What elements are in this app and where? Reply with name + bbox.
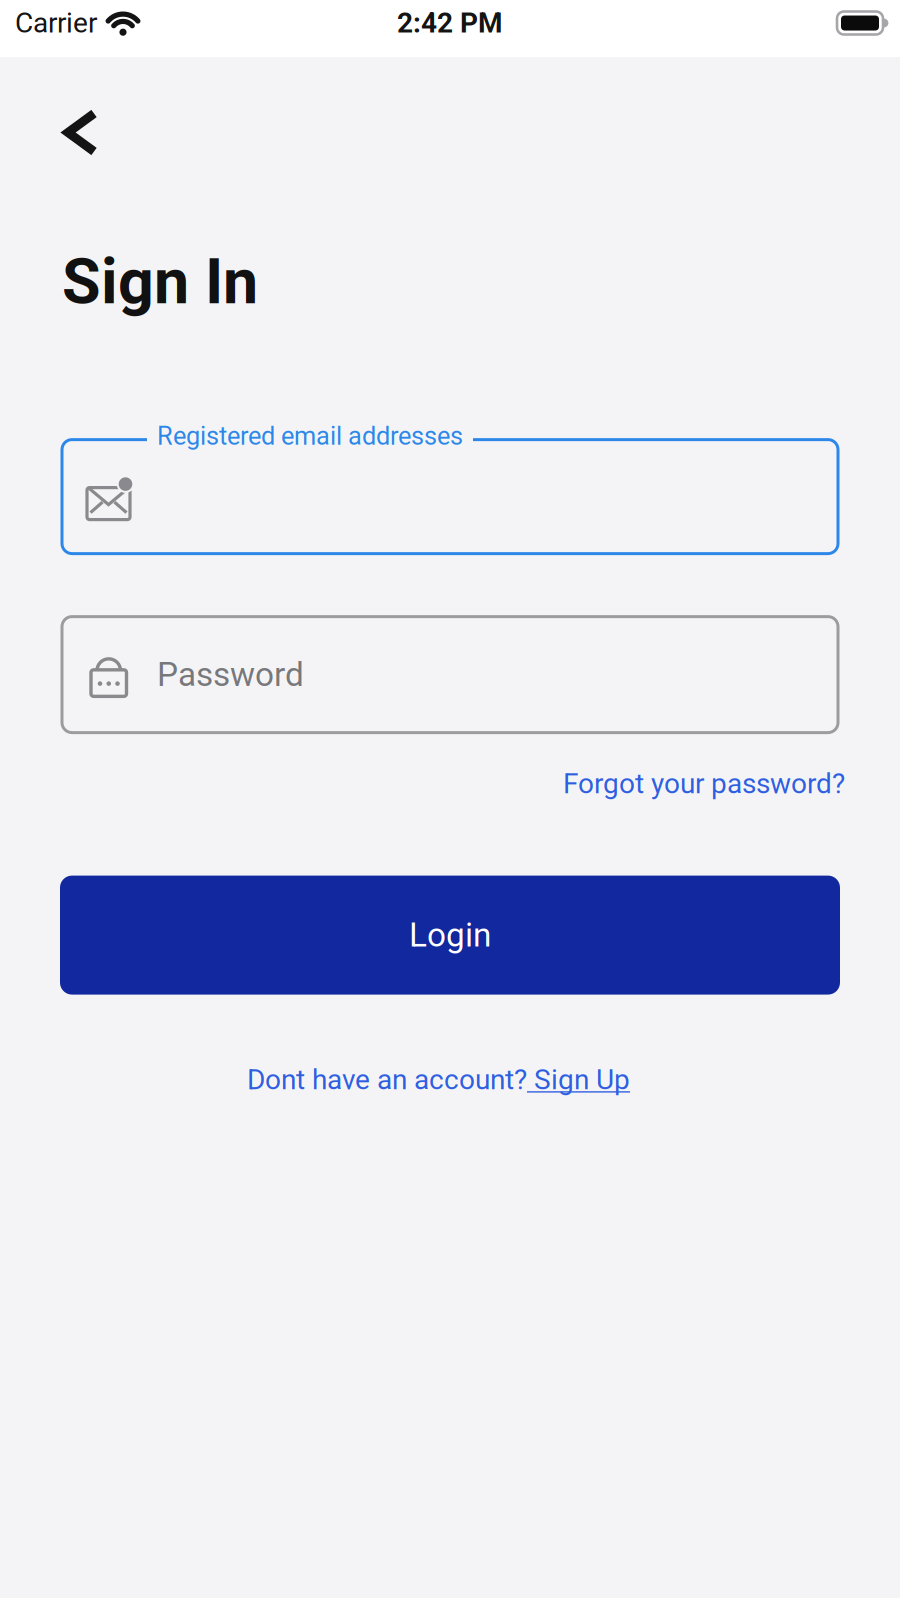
staticText: 2:42 PM	[397, 7, 503, 39]
button[interactable]: Forgot your password?	[563, 768, 845, 800]
staticText: Dont have an account?	[247, 1064, 527, 1096]
staticText: Registered email addresses	[157, 422, 463, 450]
staticText: Password	[157, 656, 304, 694]
staticText: Carrier	[15, 7, 97, 39]
staticText: Sign Up	[527, 1064, 630, 1096]
button[interactable]: Login	[60, 876, 840, 995]
button[interactable]: Dont have an account?	[247, 1064, 630, 1096]
staticText: Sign In	[62, 246, 258, 318]
button[interactable]: Back	[0, 57, 99, 156]
staticText: Forgot your password?	[563, 768, 845, 800]
staticText: Login	[409, 916, 491, 954]
